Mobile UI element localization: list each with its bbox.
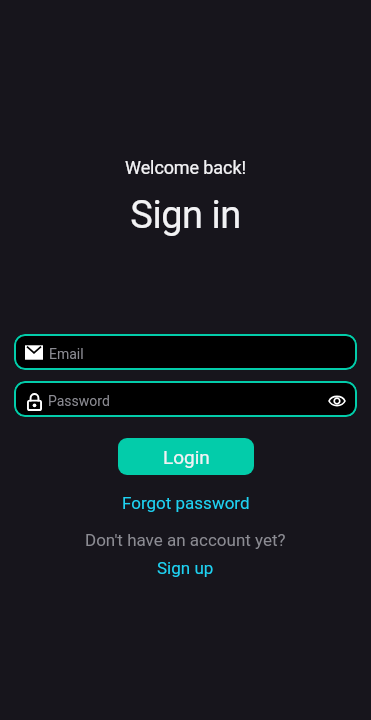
button[interactable]: Email (14, 334, 357, 370)
staticText: Password (48, 393, 110, 409)
button[interactable]: Forgot password (106, 487, 266, 519)
button[interactable]: Sign up (141, 552, 230, 584)
button[interactable]: Password (14, 381, 357, 417)
staticText: Login (163, 446, 210, 468)
staticText: Sign in (130, 193, 241, 238)
staticText: Welcome back! (125, 157, 246, 178)
staticText: Don't have an account yet? (85, 530, 286, 550)
button[interactable]: Show password (328, 394, 346, 408)
button[interactable]: Login (118, 438, 254, 475)
staticText: Email (49, 346, 84, 362)
staticText: Forgot password (122, 493, 250, 513)
staticText: Sign up (157, 558, 214, 578)
